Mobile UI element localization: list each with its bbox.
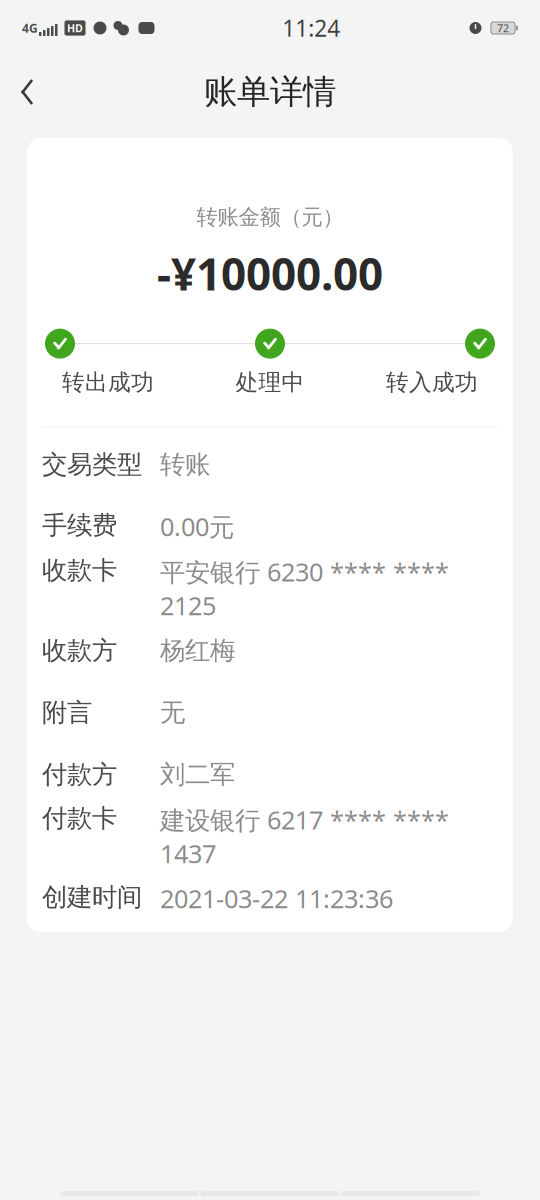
staticText: 收款方 bbox=[42, 635, 117, 666]
staticText: 创建时间 bbox=[42, 882, 142, 913]
staticText: 72 bbox=[497, 21, 509, 35]
staticText: 11:24 bbox=[282, 13, 340, 43]
staticText: 建设银行 6217 **** **** 1437 bbox=[160, 803, 449, 870]
staticText: 转账金额（元） bbox=[196, 204, 343, 230]
button[interactable]: 返回 bbox=[0, 65, 54, 119]
staticText: 4G bbox=[22, 20, 38, 36]
staticText: 转账 bbox=[160, 449, 210, 480]
staticText: HD bbox=[67, 21, 83, 35]
staticText: 杨红梅 bbox=[160, 635, 235, 666]
staticText: 平安银行 6230 **** **** 2125 bbox=[160, 555, 449, 622]
staticText: 手续费 bbox=[42, 510, 117, 541]
staticText: 收款卡 bbox=[42, 555, 117, 586]
staticText: 处理中 bbox=[235, 369, 304, 396]
staticText: 附言 bbox=[42, 697, 92, 728]
staticText: 转入成功 bbox=[386, 369, 478, 396]
staticText: 付款卡 bbox=[42, 803, 117, 834]
staticText: 付款方 bbox=[42, 759, 117, 790]
staticText: 无 bbox=[160, 697, 185, 728]
staticText: 转出成功 bbox=[62, 369, 154, 396]
staticText: 刘二军 bbox=[160, 759, 235, 790]
staticText: 交易类型 bbox=[42, 449, 142, 480]
staticText: -¥10000.00 bbox=[157, 244, 383, 303]
staticText: 2021-03-22 11:23:36 bbox=[160, 882, 393, 915]
staticText: 账单详情 bbox=[204, 71, 336, 112]
staticText: 0.00元 bbox=[160, 510, 234, 543]
